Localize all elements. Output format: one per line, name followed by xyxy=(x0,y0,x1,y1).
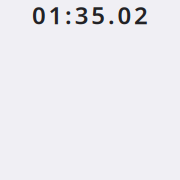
staticText: 01:35.02 xyxy=(32,0,148,31)
button[interactable]: Elapsed time 01:35.02, start or stop tim… xyxy=(0,0,180,32)
